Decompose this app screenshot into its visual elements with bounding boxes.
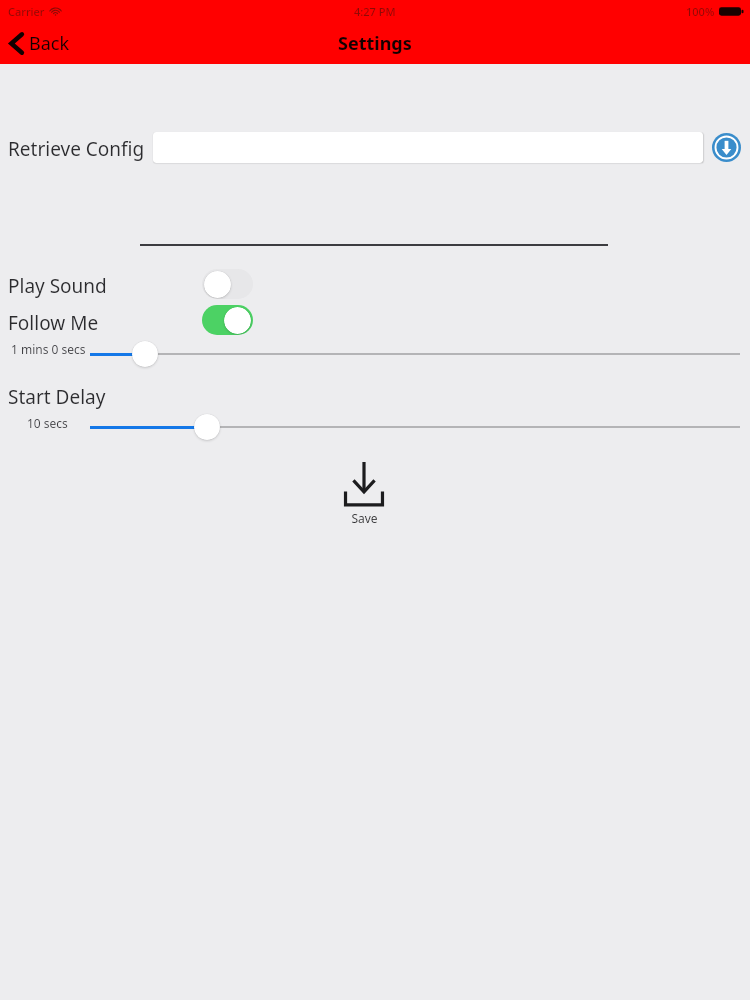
button[interactable]: Slider xyxy=(194,414,220,440)
button[interactable]: Back xyxy=(0,27,82,60)
button[interactable]: On xyxy=(202,305,253,335)
button[interactable]: Save xyxy=(336,460,392,528)
staticText: Start Delay xyxy=(8,384,106,410)
staticText: Back xyxy=(29,31,70,56)
staticText: Follow Me xyxy=(8,310,99,336)
staticText: Settings xyxy=(338,31,412,56)
staticText: Save xyxy=(351,510,378,526)
staticText: Carrier xyxy=(8,4,45,19)
staticText: 100% xyxy=(686,4,715,19)
staticText: Play Sound xyxy=(8,273,107,299)
button[interactable]: Off xyxy=(202,269,253,299)
button[interactable]: Retrieve config xyxy=(711,132,742,163)
button[interactable]: Slider xyxy=(132,341,158,367)
staticText: 4:27 PM xyxy=(354,4,396,19)
staticText: Retrieve Config xyxy=(8,136,145,162)
staticText: 1 mins 0 secs xyxy=(11,341,86,357)
staticText: 10 secs xyxy=(27,415,68,431)
